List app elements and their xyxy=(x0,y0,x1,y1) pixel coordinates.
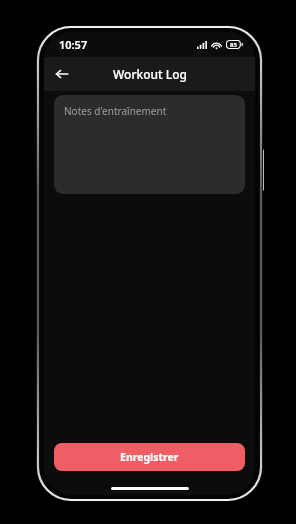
staticText: Workout Log xyxy=(113,66,187,82)
staticText: Notes d'entraînement xyxy=(64,104,167,118)
staticText: Enregistrer xyxy=(120,450,179,464)
button[interactable]: Notes d'entraînement xyxy=(54,95,245,194)
staticText: 10:57 xyxy=(59,37,88,52)
button[interactable]: Back xyxy=(48,60,76,88)
button[interactable]: Enregistrer xyxy=(54,443,245,471)
staticText: 85 xyxy=(230,41,237,49)
